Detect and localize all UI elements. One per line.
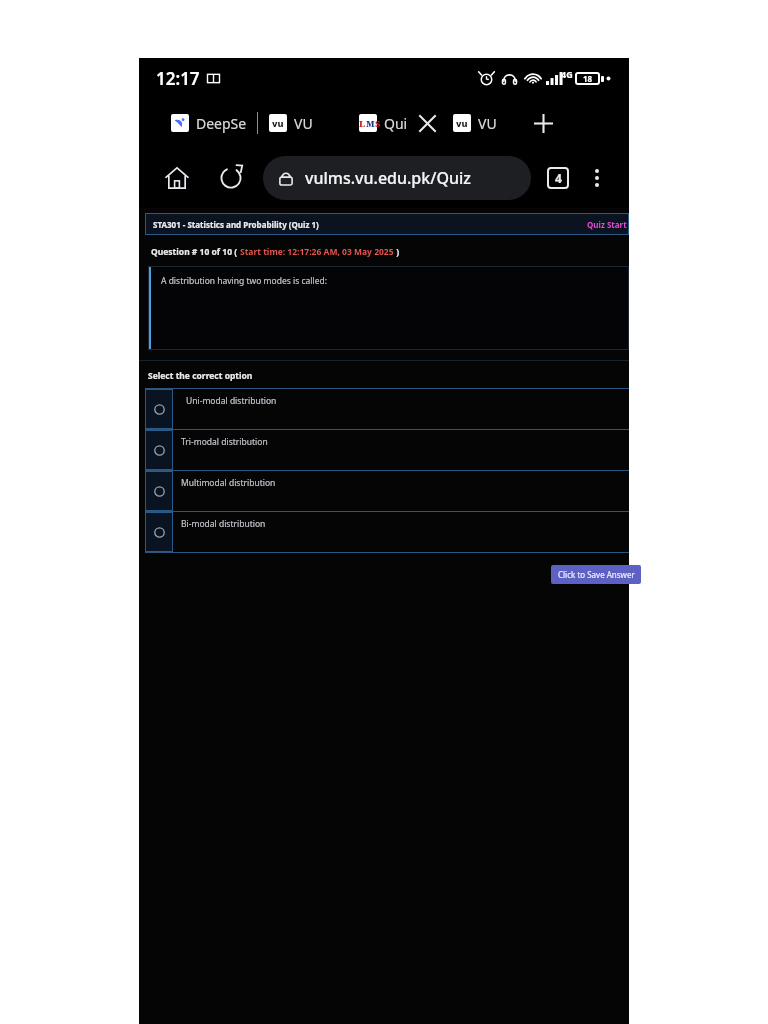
staticText: 4 xyxy=(555,170,562,186)
button[interactable]: vulms.vu.edu.pk/Quiz xyxy=(263,156,531,200)
staticText: Uni-modal distribution xyxy=(186,395,277,407)
staticText: L xyxy=(359,117,366,129)
button[interactable]: Tabs xyxy=(543,163,573,193)
staticText: VU Quiz xyxy=(294,114,345,133)
staticText: Click to Save Answer xyxy=(558,569,635,580)
button[interactable]: L xyxy=(359,106,409,140)
button[interactable]: vu xyxy=(269,106,345,140)
staticText: S xyxy=(375,117,377,129)
staticText: 12:17 xyxy=(156,67,200,90)
staticText: 4G xyxy=(561,68,573,80)
button[interactable]: Click to Save Answer xyxy=(551,565,641,584)
staticText: Start time: 12:17:26 AM, 03 May 2025 xyxy=(240,246,394,258)
staticText: ) xyxy=(394,246,400,258)
staticText: Multimodal distribution xyxy=(181,477,276,489)
staticText: DeepSeek xyxy=(196,114,249,133)
button[interactable]: Uni-modal distribution xyxy=(145,389,629,429)
staticText: Tri-modal distribution xyxy=(181,436,268,448)
staticText: Select the correct option xyxy=(148,370,253,382)
staticText: vu xyxy=(456,117,468,129)
button[interactable]: Bi-modal distribution xyxy=(145,512,629,552)
staticText: Question # 10 of 10 ( xyxy=(151,246,240,258)
button[interactable]: Close tab xyxy=(413,109,441,137)
button[interactable]: Home xyxy=(159,160,195,196)
staticText: Quiz xyxy=(384,114,409,133)
staticText: Bi-modal distribution xyxy=(181,518,266,530)
staticText: STA301 - Statistics and Probability (Qui… xyxy=(153,219,319,230)
button[interactable]: More options xyxy=(581,162,613,194)
staticText: vu xyxy=(272,117,284,129)
button[interactable]: Tri-modal distribution xyxy=(145,430,629,470)
button[interactable]: vu xyxy=(453,106,525,140)
staticText: VU Quiz xyxy=(478,114,525,133)
button[interactable]: New tab xyxy=(527,107,559,139)
staticText: M xyxy=(366,117,375,129)
staticText: vulms.vu.edu.pk/Quiz xyxy=(305,167,471,189)
staticText: Quiz Start xyxy=(587,219,627,230)
button[interactable]: Multimodal distribution xyxy=(145,471,629,511)
staticText: A distribution having two modes is calle… xyxy=(161,275,327,287)
button[interactable]: DeepSeek xyxy=(171,106,249,140)
button[interactable]: Reload xyxy=(213,160,249,196)
staticText: 18 xyxy=(583,73,593,84)
